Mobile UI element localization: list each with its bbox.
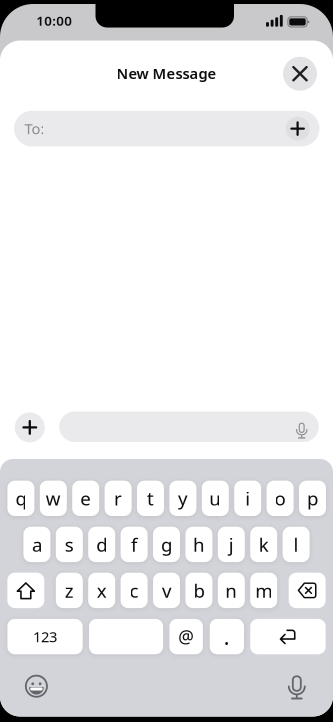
staticText: o <box>275 486 286 511</box>
button[interactable]: Add attachment <box>15 412 45 442</box>
button[interactable]: b <box>185 573 212 608</box>
staticText: l <box>294 532 299 557</box>
staticText: i <box>245 486 250 511</box>
staticText: To: <box>24 119 44 138</box>
button[interactable]: c <box>121 573 148 608</box>
button[interactable]: Space <box>89 619 163 654</box>
staticText: p <box>307 486 318 511</box>
button[interactable]: Emoji <box>24 674 48 698</box>
button[interactable]: e <box>72 481 99 516</box>
button[interactable]: j <box>218 527 245 562</box>
button[interactable]: q <box>7 481 34 516</box>
button[interactable]: p <box>299 481 326 516</box>
staticText: k <box>259 532 269 557</box>
button[interactable]: z <box>56 573 83 608</box>
button[interactable]: 123 <box>7 619 83 654</box>
button[interactable]: n <box>218 573 245 608</box>
staticText: y <box>178 486 188 511</box>
button[interactable]: a <box>23 527 50 562</box>
staticText: New Message <box>116 64 216 83</box>
button[interactable]: Delete <box>289 573 326 608</box>
staticText: 123 <box>33 627 57 646</box>
button[interactable]: o <box>267 481 294 516</box>
button[interactable]: @ <box>169 619 203 654</box>
staticText: f <box>131 532 137 557</box>
staticText: s <box>65 532 74 557</box>
staticText: j <box>229 532 234 557</box>
staticText: r <box>114 486 122 511</box>
button[interactable]: t <box>137 481 164 516</box>
button[interactable]: l <box>283 527 310 562</box>
button[interactable]: Close <box>283 57 317 91</box>
staticText: @ <box>178 625 194 648</box>
button[interactable]: d <box>88 527 115 562</box>
staticText: b <box>193 578 204 603</box>
button[interactable]: To: <box>14 111 319 146</box>
staticText: x <box>97 578 107 603</box>
staticText: g <box>161 532 172 557</box>
button[interactable]: m <box>250 573 277 608</box>
button[interactable]: Shift <box>7 573 44 608</box>
staticText: c <box>130 578 139 603</box>
staticText: . <box>224 622 230 651</box>
button[interactable]: s <box>56 527 83 562</box>
button[interactable]: i <box>234 481 261 516</box>
button[interactable]: Return <box>250 619 326 654</box>
staticText: n <box>225 578 237 603</box>
button[interactable]: v <box>153 573 180 608</box>
staticText: w <box>46 486 61 511</box>
button[interactable]: y <box>169 481 196 516</box>
staticText: z <box>65 578 74 603</box>
staticText: m <box>255 578 272 603</box>
button[interactable]: f <box>121 527 148 562</box>
staticText: 10:00 <box>36 12 72 29</box>
button[interactable]: g <box>153 527 180 562</box>
button[interactable]: Dictate <box>291 414 313 440</box>
staticText: q <box>15 486 26 511</box>
button[interactable]: Message text field <box>59 411 319 442</box>
staticText: v <box>162 578 171 603</box>
button[interactable]: x <box>88 573 115 608</box>
staticText: a <box>32 532 42 557</box>
button[interactable]: k <box>250 527 277 562</box>
staticText: h <box>193 532 205 557</box>
staticText: t <box>147 486 154 511</box>
button[interactable]: Add contact <box>286 117 310 141</box>
staticText: d <box>96 532 107 557</box>
staticText: u <box>209 486 221 511</box>
button[interactable]: w <box>40 481 67 516</box>
button[interactable]: r <box>105 481 132 516</box>
button[interactable]: h <box>185 527 212 562</box>
button[interactable]: . <box>210 619 244 654</box>
staticText: e <box>80 486 91 511</box>
button[interactable]: Dictation <box>285 673 309 700</box>
button[interactable]: u <box>202 481 229 516</box>
